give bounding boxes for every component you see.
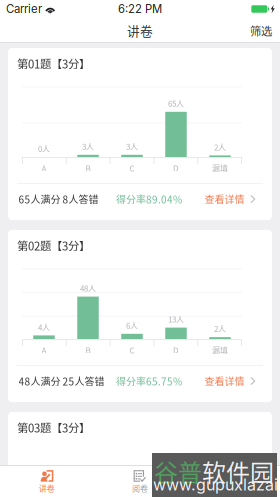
- staticText: 得分率65.75%: [116, 374, 182, 388]
- staticText: 48人满分 25人答错: [18, 374, 104, 388]
- button[interactable]: 筛选: [242, 18, 280, 43]
- staticText: A: [41, 344, 46, 356]
- staticText: 第02题【3分】: [17, 237, 90, 254]
- staticText: 13人: [168, 313, 184, 325]
- staticText: 漏填: [212, 344, 228, 356]
- staticText: 3人: [82, 140, 94, 152]
- staticText: 第03题【3分】: [17, 419, 90, 436]
- staticText: 0人: [38, 143, 50, 154]
- staticText: 6人: [126, 319, 138, 331]
- staticText: 2人: [214, 323, 226, 334]
- staticText: 65人满分 8人答错: [18, 192, 98, 206]
- staticText: Carrier: [6, 2, 42, 16]
- staticText: 查看详情: [204, 374, 244, 388]
- staticText: 筛选: [250, 22, 272, 39]
- staticText: 软件园: [202, 454, 274, 489]
- button[interactable]: 讲卷: [0, 465, 93, 497]
- staticText: 阅卷: [132, 482, 148, 494]
- staticText: C: [129, 344, 134, 356]
- button[interactable]: 查看详情: [200, 185, 260, 213]
- staticText: 2人: [214, 141, 226, 153]
- staticText: B: [85, 344, 90, 356]
- staticText: 得分率89.04%: [116, 192, 182, 206]
- staticText: C: [129, 162, 134, 174]
- button[interactable]: 我的: [187, 465, 280, 497]
- button[interactable]: 查看详情: [200, 367, 260, 395]
- staticText: A: [41, 162, 46, 174]
- staticText: 第01题【3分】: [17, 55, 90, 72]
- staticText: 谷普: [154, 454, 202, 489]
- staticText: www.gupuxlazai.com: [153, 475, 278, 497]
- staticText: D: [173, 162, 179, 174]
- staticText: 我的: [225, 482, 241, 494]
- staticText: 讲卷: [127, 21, 153, 40]
- staticText: 漏填: [212, 162, 228, 174]
- staticText: 48人: [80, 282, 96, 294]
- staticText: B: [85, 162, 90, 174]
- staticText: 查看详情: [204, 192, 244, 206]
- staticText: 3人: [126, 140, 138, 152]
- staticText: 讲卷: [39, 482, 55, 494]
- staticText: 65人: [168, 97, 184, 109]
- button[interactable]: 阅卷: [93, 465, 187, 497]
- staticText: 4人: [38, 321, 50, 333]
- staticText: 6:22 PM: [118, 2, 162, 16]
- staticText: D: [173, 344, 179, 356]
